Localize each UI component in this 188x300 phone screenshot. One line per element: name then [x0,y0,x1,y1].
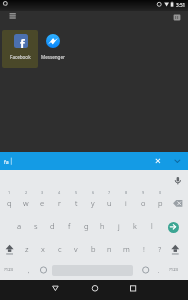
button[interactable] [45,281,64,299]
button[interactable]: r [51,197,67,209]
button[interactable]: y [85,197,101,209]
button[interactable]: d [44,220,60,232]
button[interactable]: v [68,243,84,255]
staticText: 7 [108,190,111,195]
staticText: 8 [125,190,128,195]
staticText: a [17,221,22,231]
staticText: m [123,244,130,254]
button[interactable]: b [85,243,101,255]
staticText: 1 [8,190,11,195]
staticText: v [74,244,78,254]
button[interactable]: a [11,220,27,232]
button[interactable]: u [101,197,117,209]
staticText: s [34,221,38,231]
button[interactable]: s [28,220,44,232]
staticText: ? [158,244,162,254]
button[interactable]: w [18,197,34,209]
staticText: . [158,267,160,274]
button[interactable]: m [118,243,134,255]
button[interactable]: e [34,197,50,209]
button[interactable]: p [152,197,168,209]
staticText: 5 [75,190,78,195]
staticText: 3:51 [176,2,186,8]
staticText: , [28,267,30,274]
button[interactable]: ?123 [1,264,17,276]
staticText: Messenger [41,54,65,60]
button[interactable] [170,153,186,169]
staticText: 3 [41,190,44,195]
button[interactable]: i [118,197,134,209]
staticText: ! [143,244,145,254]
button[interactable]: Facebook [2,53,38,61]
staticText: e [40,198,45,208]
staticText: o [141,198,146,208]
button[interactable]: ? [152,243,168,255]
button[interactable]: o [135,197,151,209]
staticText: w [23,198,29,208]
staticText: i [125,198,127,208]
button[interactable] [46,34,60,48]
staticText: k [133,221,137,231]
staticText: f [68,221,71,231]
staticText: z [25,244,29,254]
button[interactable] [0,152,188,170]
staticText: 0 [159,190,162,195]
staticText: x [41,244,45,254]
button[interactable]: Messenger [35,53,71,61]
staticText: y [91,198,95,208]
button[interactable]: ?123 [166,264,182,276]
button[interactable]: c [52,243,68,255]
button[interactable]: q [1,197,17,209]
button[interactable] [124,281,143,299]
staticText: f [20,36,25,48]
button[interactable]: t [68,197,84,209]
button[interactable] [2,30,38,68]
button[interactable]: j [111,220,127,232]
staticText: h [100,221,105,231]
staticText: l [151,221,153,231]
staticText: 4 [58,190,61,195]
button[interactable]: ! [136,243,152,255]
staticText: t [75,198,78,208]
staticText: p [158,198,163,208]
staticText: 2 [25,190,28,195]
staticText: d [50,221,55,231]
button[interactable]: h [94,220,110,232]
button[interactable] [150,153,166,169]
button[interactable]: . [151,264,167,276]
button[interactable]: g [78,220,94,232]
staticText: q [7,198,12,208]
staticText: Facebook [10,54,31,60]
staticText: 6 [92,190,95,195]
staticText: n [107,244,112,254]
staticText: ?123 [169,267,179,273]
staticText: u [107,198,112,208]
button[interactable]: l [144,220,160,232]
staticText: ?123 [4,267,14,273]
button[interactable]: n [101,243,117,255]
staticText: g [84,221,89,231]
staticText: r [58,198,61,208]
button[interactable]: x [35,243,51,255]
button[interactable] [168,222,179,233]
button[interactable]: k [127,220,143,232]
staticText: c [58,244,62,254]
staticText: 9 [142,190,145,195]
button[interactable]: , [21,264,37,276]
button[interactable]: f [61,220,77,232]
staticText: fa [4,158,9,165]
staticText: b [91,244,96,254]
staticText: j [118,221,120,231]
button[interactable] [85,281,104,299]
button[interactable]: z [19,243,35,255]
